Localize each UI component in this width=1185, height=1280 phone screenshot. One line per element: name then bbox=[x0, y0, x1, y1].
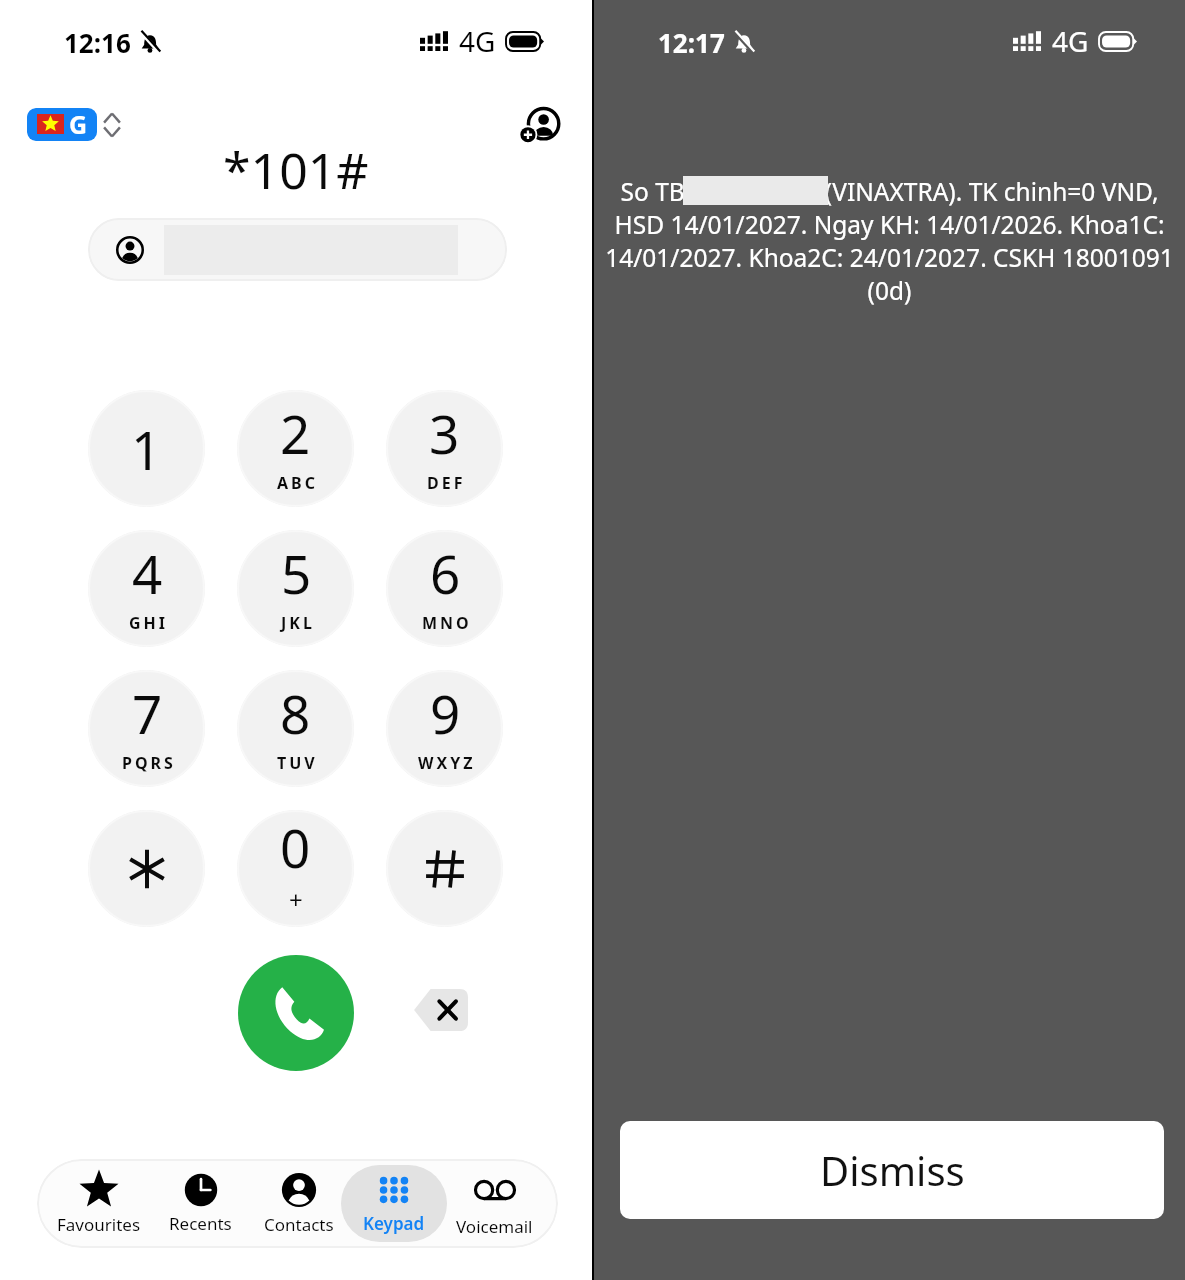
staticText: 4G bbox=[459, 22, 496, 60]
staticText: Recents bbox=[169, 1212, 232, 1235]
staticText: 3 bbox=[429, 397, 460, 469]
button[interactable]: Voicemail bbox=[441, 1165, 547, 1242]
button[interactable]: star bbox=[88, 810, 205, 927]
button[interactable]: Backspace bbox=[413, 986, 468, 1034]
staticText: 9 bbox=[430, 677, 461, 749]
button[interactable]: Search contacts bbox=[88, 218, 507, 281]
staticText: + bbox=[289, 883, 303, 916]
staticText: WXYZ bbox=[418, 752, 476, 774]
button[interactable]: Add contact bbox=[514, 101, 564, 151]
button[interactable]: 5 bbox=[237, 530, 354, 647]
staticText: PQRS bbox=[122, 752, 176, 774]
button[interactable]: 1 bbox=[88, 390, 205, 507]
button[interactable]: Recents bbox=[147, 1165, 253, 1242]
staticText: 14/01/2027. Khoa2C: 24/01/2027. CSKH 180… bbox=[605, 241, 1174, 274]
staticText: JKL bbox=[281, 612, 315, 634]
button[interactable]: Favourites bbox=[46, 1165, 152, 1242]
staticText: DEF bbox=[427, 472, 466, 494]
staticText: MNO bbox=[422, 612, 472, 634]
staticText: HSD 14/01/2027. Ngay KH: 14/01/2026. Kho… bbox=[605, 208, 1174, 241]
staticText: Dismiss bbox=[820, 1143, 965, 1197]
staticText: 5 bbox=[281, 537, 312, 609]
staticText: 1 bbox=[131, 413, 162, 485]
button[interactable]: Select SIM card bbox=[27, 108, 121, 141]
staticText: 12:17 bbox=[658, 25, 725, 60]
staticText: (0d) bbox=[605, 274, 1174, 307]
staticText: 0 bbox=[280, 811, 311, 883]
button[interactable]: pound bbox=[386, 810, 503, 927]
staticText: 2 bbox=[280, 397, 311, 469]
button[interactable]: 2 bbox=[237, 390, 354, 507]
staticText: Favourites bbox=[57, 1213, 141, 1236]
staticText: Keypad bbox=[363, 1212, 425, 1235]
staticText: *101# bbox=[223, 136, 369, 204]
staticText: Contacts bbox=[264, 1213, 334, 1236]
button[interactable]: Dismiss bbox=[620, 1121, 1164, 1219]
button[interactable]: 4 bbox=[88, 530, 205, 647]
staticText: ABC bbox=[277, 472, 318, 494]
staticText: G bbox=[69, 108, 88, 140]
button[interactable]: Call bbox=[238, 955, 354, 1071]
button[interactable]: 0 bbox=[237, 810, 354, 927]
staticText: 4 bbox=[132, 537, 163, 609]
staticText: 4G bbox=[1052, 22, 1089, 60]
button[interactable]: 8 bbox=[237, 670, 354, 787]
staticText: Voicemail bbox=[456, 1215, 533, 1238]
button[interactable]: 3 bbox=[386, 390, 503, 507]
staticText: 6 bbox=[430, 537, 461, 609]
button[interactable]: Contacts bbox=[246, 1165, 352, 1242]
staticText: TUV bbox=[277, 752, 318, 774]
staticText: So TB (VINAXTRA). TK chinh=0 VND, bbox=[605, 175, 1174, 208]
staticText: 8 bbox=[280, 677, 311, 749]
button[interactable]: 6 bbox=[386, 530, 503, 647]
button[interactable]: Keypad bbox=[341, 1165, 447, 1242]
staticText: 12:16 bbox=[64, 25, 131, 60]
button[interactable]: 7 bbox=[88, 670, 205, 787]
staticText: 7 bbox=[132, 677, 163, 749]
staticText: GHI bbox=[129, 612, 169, 634]
button[interactable]: 9 bbox=[386, 670, 503, 787]
